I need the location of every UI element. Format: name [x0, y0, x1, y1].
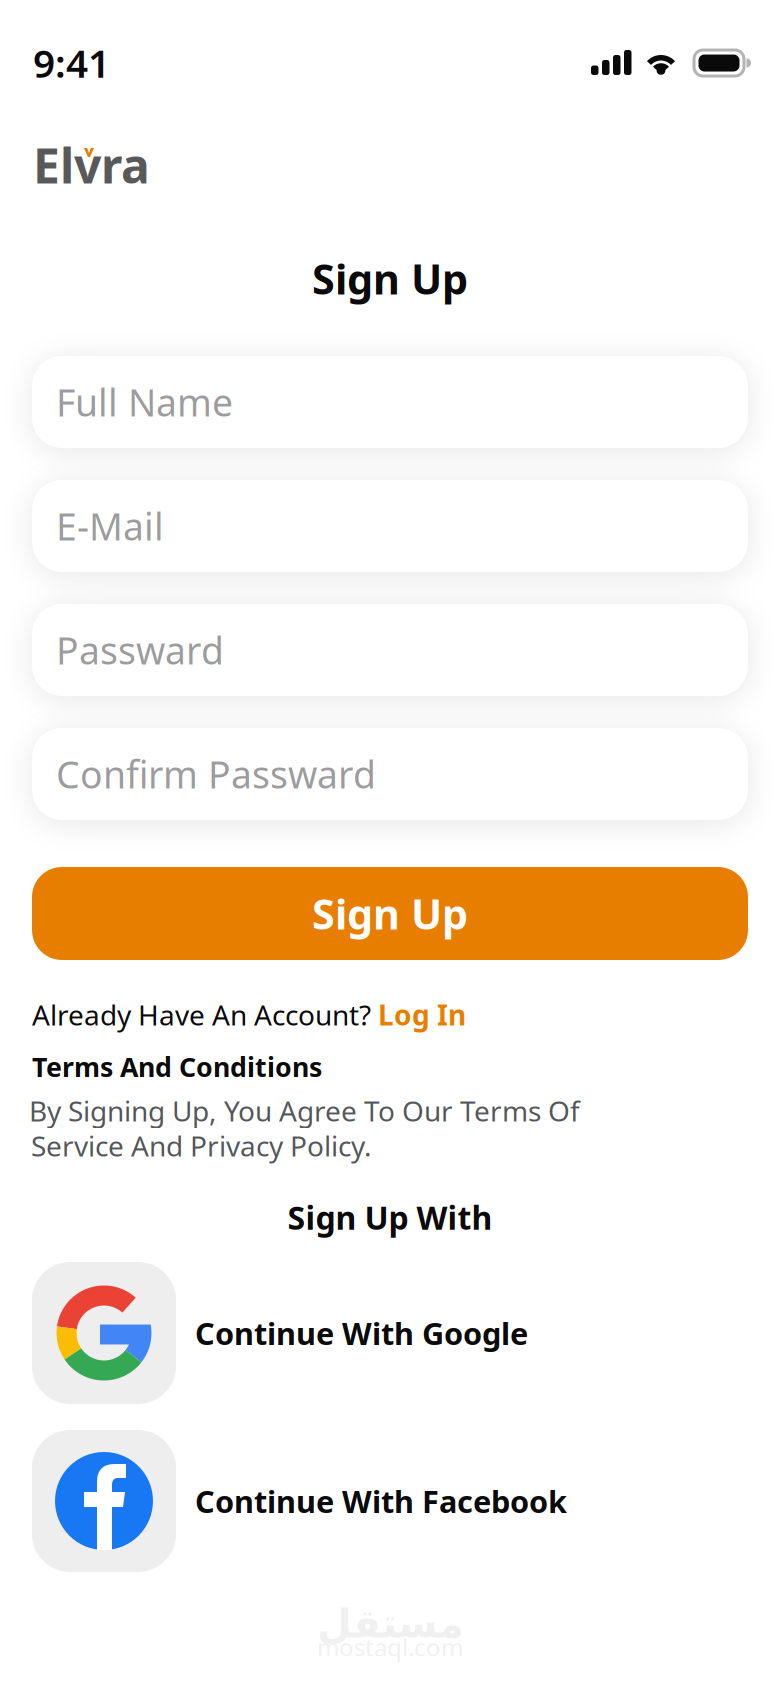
- staticText: Service And Privacy Policy.: [31, 1127, 372, 1164]
- button[interactable]: E-Mail: [32, 480, 748, 572]
- staticText: E-Mail: [56, 501, 164, 551]
- button[interactable]: Full Name: [32, 356, 748, 448]
- staticText: Confirm Passward: [56, 749, 376, 799]
- staticText: Continue With Facebook: [195, 1481, 567, 1521]
- staticText: Elvra: [33, 133, 150, 197]
- staticText: 9:41: [33, 37, 110, 88]
- button[interactable]: Continue With Facebook: [32, 1430, 748, 1572]
- staticText: Full Name: [56, 377, 233, 427]
- button[interactable]: Passward: [32, 604, 748, 696]
- button[interactable]: Log In: [378, 996, 466, 1033]
- staticText: Continue With Google: [195, 1313, 528, 1353]
- staticText: Log In: [378, 996, 466, 1033]
- button[interactable]: Confirm Passward: [32, 728, 748, 820]
- staticText: mostaql.com: [317, 1631, 463, 1663]
- staticText: Sign Up With: [287, 1196, 492, 1238]
- staticText: Terms And Conditions: [32, 1049, 322, 1084]
- staticText: Sign Up: [312, 251, 468, 306]
- button[interactable]: Continue With Google: [32, 1262, 748, 1404]
- staticText: مستقل: [316, 1601, 463, 1646]
- staticText: Passward: [56, 625, 224, 675]
- staticText: Sign Up: [312, 886, 468, 941]
- button[interactable]: Sign Up: [32, 867, 748, 960]
- staticText: By Signing Up, You Agree To Our Terms Of: [29, 1092, 580, 1129]
- staticText: Already Have An Account?: [32, 996, 378, 1033]
